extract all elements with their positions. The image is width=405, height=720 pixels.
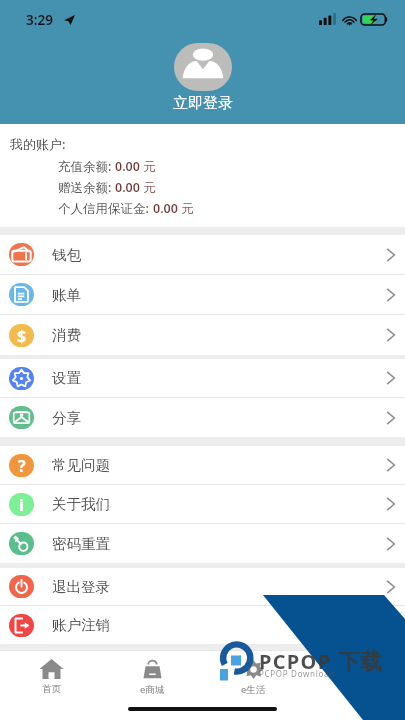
staticText: 0.00 元 [115,158,156,175]
button[interactable]: ? [0,446,405,485]
staticText: PCPOP [259,648,332,675]
staticText: $ [17,325,27,347]
staticText: 分享 [52,409,81,427]
staticText: 账户注销 [52,616,110,634]
staticText: e生活 [241,683,266,696]
button[interactable]: e生活 [203,651,304,720]
staticText: 退出登录 [52,578,110,596]
staticText: 下载 [338,648,382,676]
staticText: 0.00 元 [115,179,156,196]
button[interactable]: 退出登录 [0,568,405,606]
staticText: ? [18,455,26,477]
staticText: 消费 [52,326,81,344]
staticText: 首页 [42,683,61,695]
button[interactable]: i [0,485,405,524]
staticText: 0.00 元 [153,200,194,217]
button[interactable]: 账单 [0,275,405,315]
button[interactable]: 我的 [304,651,405,720]
staticText: 充值余额: [58,158,115,175]
staticText: e商城 [140,683,165,696]
staticText: i [19,494,24,516]
staticText: 个人信用保证金: [58,200,153,217]
button[interactable]: 首页 [0,651,102,720]
staticText: 3:29 [26,11,53,29]
button[interactable]: 分享 [0,398,405,437]
staticText: PCPOP Download [259,668,335,679]
staticText: 我的账户: [10,135,66,153]
staticText: 赠送余额: [58,179,115,196]
staticText: 账单 [52,286,81,304]
button[interactable]: 账户注销 [0,606,405,644]
staticText: 钱包 [52,246,81,264]
staticText: 立即登录 [173,94,233,113]
staticText: 常见问题 [52,456,110,474]
button[interactable]: $ [0,315,405,355]
button[interactable]: 密码重置 [0,524,405,563]
button[interactable]: 钱包 [0,235,405,275]
button[interactable]: 设置 [0,359,405,398]
button[interactable] [174,43,232,91]
staticText: 关于我们 [52,495,110,513]
button[interactable]: e商城 [102,651,203,720]
staticText: 密码重置 [52,535,110,553]
staticText: 设置 [52,369,81,387]
